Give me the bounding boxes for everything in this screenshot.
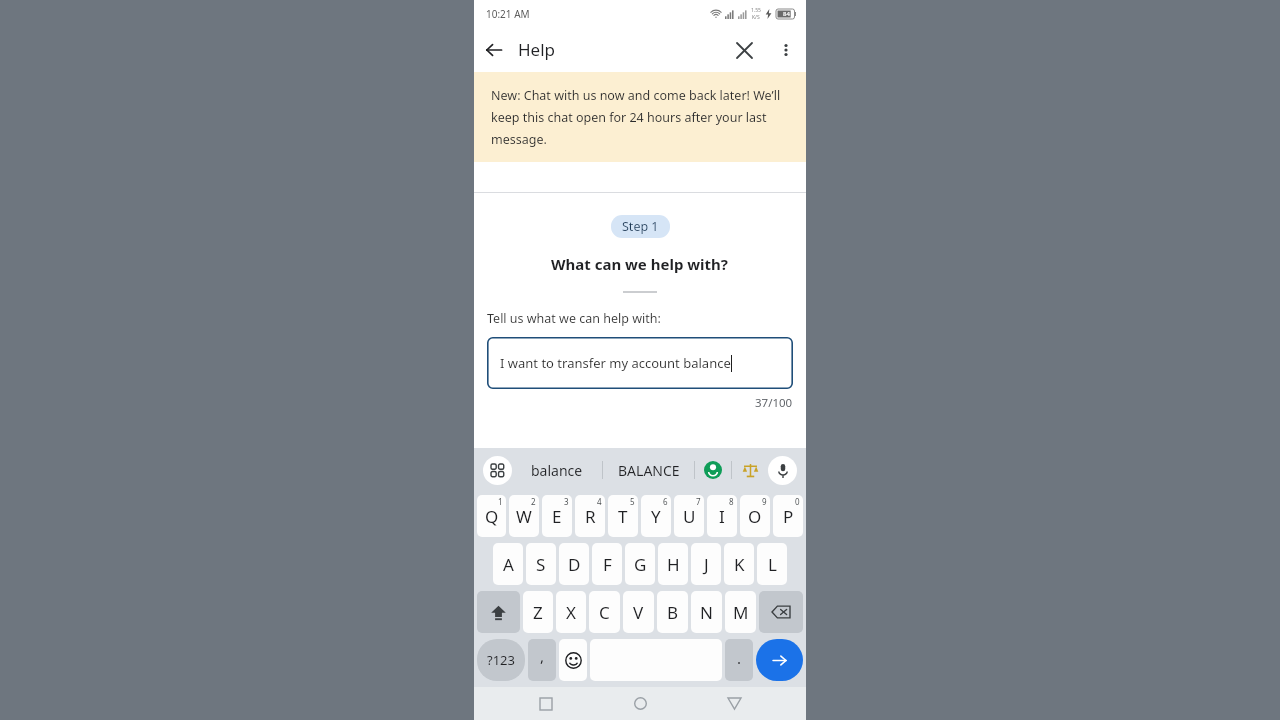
staticText: ,	[540, 646, 545, 666]
staticText: 9	[762, 496, 767, 507]
staticText: Step 1	[622, 218, 659, 235]
button[interactable]: G	[625, 543, 655, 585]
button[interactable]: Sticker suggestion	[732, 448, 768, 492]
staticText: N	[700, 601, 713, 624]
staticText: W	[516, 505, 532, 528]
button[interactable]: J	[691, 543, 721, 585]
button[interactable]: Emoji	[559, 639, 587, 681]
button[interactable]: ?123	[477, 639, 525, 681]
button[interactable]: V	[623, 591, 654, 633]
button[interactable]: .	[725, 639, 753, 681]
staticText: 84	[783, 10, 790, 18]
staticText: J	[704, 553, 709, 576]
staticText: P	[783, 505, 794, 528]
staticText: K/S	[752, 14, 760, 21]
staticText: O	[748, 505, 762, 528]
button[interactable]: Step 1	[611, 215, 670, 238]
staticText: V	[633, 601, 644, 624]
staticText: H	[667, 553, 680, 576]
staticText: G	[634, 553, 647, 576]
button[interactable]: O	[740, 495, 770, 537]
button[interactable]: H	[658, 543, 688, 585]
staticText: Tell us what we can help with:	[487, 310, 661, 327]
button[interactable]: balance	[512, 448, 602, 492]
button[interactable]: Home	[618, 687, 662, 720]
button[interactable]: D	[559, 543, 589, 585]
button[interactable]: E	[542, 495, 572, 537]
button[interactable]: A	[493, 543, 523, 585]
button[interactable]: I	[707, 495, 737, 537]
staticText: I	[719, 505, 725, 528]
staticText: D	[568, 553, 581, 576]
button[interactable]: Enter	[756, 639, 803, 681]
staticText: 8	[729, 496, 734, 507]
button[interactable]: Y	[641, 495, 671, 537]
staticText: X	[566, 601, 576, 624]
button[interactable]: U	[674, 495, 704, 537]
button[interactable]: Q	[477, 495, 506, 537]
staticText: U	[683, 505, 696, 528]
button[interactable]: I want to transfer my account balance	[487, 337, 793, 389]
button[interactable]: L	[757, 543, 787, 585]
staticText: L	[768, 553, 777, 576]
staticText: 37/100	[755, 395, 793, 411]
staticText: 3	[564, 496, 569, 507]
button[interactable]: B	[657, 591, 688, 633]
button[interactable]: N	[691, 591, 722, 633]
button[interactable]: Z	[523, 591, 553, 633]
button[interactable]: S	[526, 543, 556, 585]
staticText: B	[667, 601, 679, 624]
staticText: balance	[531, 461, 583, 480]
staticText: 7	[696, 496, 701, 507]
staticText: BALANCE	[618, 461, 680, 480]
button[interactable]: R	[575, 495, 605, 537]
staticText: 4	[597, 496, 602, 507]
staticText: M	[733, 601, 749, 624]
button[interactable]: W	[509, 495, 539, 537]
button[interactable]: Voice input	[768, 456, 797, 485]
button[interactable]: C	[589, 591, 620, 633]
button[interactable]: Recents	[524, 687, 568, 720]
staticText: 2	[531, 496, 536, 507]
staticText: E	[552, 505, 562, 528]
staticText: I want to transfer my account balance	[500, 354, 731, 372]
staticText: .	[737, 648, 742, 668]
staticText: What can we help with?	[551, 254, 729, 274]
staticText: 5	[630, 496, 635, 507]
staticText: F	[603, 553, 612, 576]
staticText: Z	[533, 601, 543, 624]
button[interactable]: More options	[766, 30, 806, 70]
button[interactable]: X	[556, 591, 586, 633]
staticText: S	[536, 553, 546, 576]
staticText: Y	[651, 505, 661, 528]
button[interactable]: Emoji suggestion	[695, 448, 731, 492]
staticText: 1.55	[751, 7, 761, 14]
staticText: R	[585, 505, 596, 528]
button[interactable]: T	[608, 495, 638, 537]
staticText: 6	[663, 496, 668, 507]
button[interactable]: Shift	[477, 591, 520, 633]
staticText: C	[599, 601, 610, 624]
staticText: K	[734, 553, 745, 576]
button[interactable]: M	[725, 591, 756, 633]
staticText: Help	[518, 38, 556, 61]
button[interactable]: ,	[528, 639, 556, 681]
button[interactable]: F	[592, 543, 622, 585]
button[interactable]: Close	[722, 28, 766, 72]
button[interactable]: P	[773, 495, 803, 537]
staticText: Q	[485, 505, 499, 528]
button[interactable]: K	[724, 543, 754, 585]
staticText: 1	[498, 496, 503, 507]
button[interactable]: BALANCE	[603, 448, 694, 492]
button[interactable]: Back	[712, 687, 756, 720]
staticText: 10:21 AM	[486, 7, 530, 21]
button[interactable]: Backspace	[759, 591, 803, 633]
staticText: 0	[795, 496, 800, 507]
staticText: ?123	[487, 651, 515, 669]
staticText: T	[618, 505, 628, 528]
staticText: A	[503, 553, 514, 576]
staticText: New: Chat with us now and come back late…	[491, 87, 789, 148]
button[interactable]: Back	[474, 30, 514, 70]
button[interactable]: Keyboard toolbar	[483, 456, 512, 485]
